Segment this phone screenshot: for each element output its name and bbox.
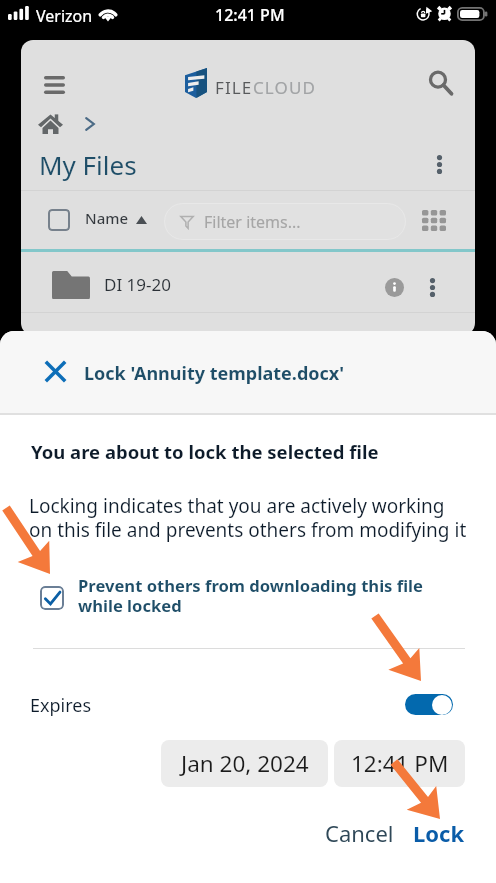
staticText: FILE [215,76,253,99]
button[interactable]: Expires toggle [405,694,453,715]
button[interactable]: More options [420,145,458,183]
button[interactable]: Jan 20, 2024 [161,740,328,787]
staticText: Lock [413,818,465,848]
button[interactable]: Prevent others from downloading this fil… [40,586,440,629]
button[interactable] [21,252,475,312]
staticText: Filter items... [204,211,301,233]
button[interactable]: Grid view [416,202,452,238]
staticText: Lock 'Annuity template.docx' [84,361,345,386]
staticText: Prevent others from downloading this fil… [78,574,423,617]
staticText: My Files [39,147,137,182]
button[interactable]: Search [418,60,463,105]
staticText: Expires [30,693,92,718]
staticText: Name [85,208,129,228]
staticText: You are about to lock the selected file [31,439,379,464]
button[interactable]: Item menu [413,268,451,306]
button[interactable]: 12:41 PM [334,740,465,787]
button[interactable]: Name [85,208,147,228]
staticText: CLOUD [253,76,316,99]
button[interactable]: Select all [48,209,70,231]
staticText: Verizon [36,5,93,27]
staticText: 12:41 PM [351,748,449,779]
button[interactable]: Info [376,269,412,305]
button[interactable]: Lock [403,810,475,856]
staticText: 12:41 PM [215,4,285,26]
staticText: Jan 20, 2024 [181,748,309,779]
button[interactable]: Close [38,354,73,389]
staticText: Locking indicates that you are actively … [29,493,496,542]
button[interactable]: Cancel [315,810,404,856]
staticText: Cancel [325,818,394,848]
button[interactable]: Filter items... [164,203,406,240]
staticText: DI 19-20 [104,273,171,296]
button[interactable]: Home [31,108,69,140]
button[interactable]: Menu [32,62,77,107]
